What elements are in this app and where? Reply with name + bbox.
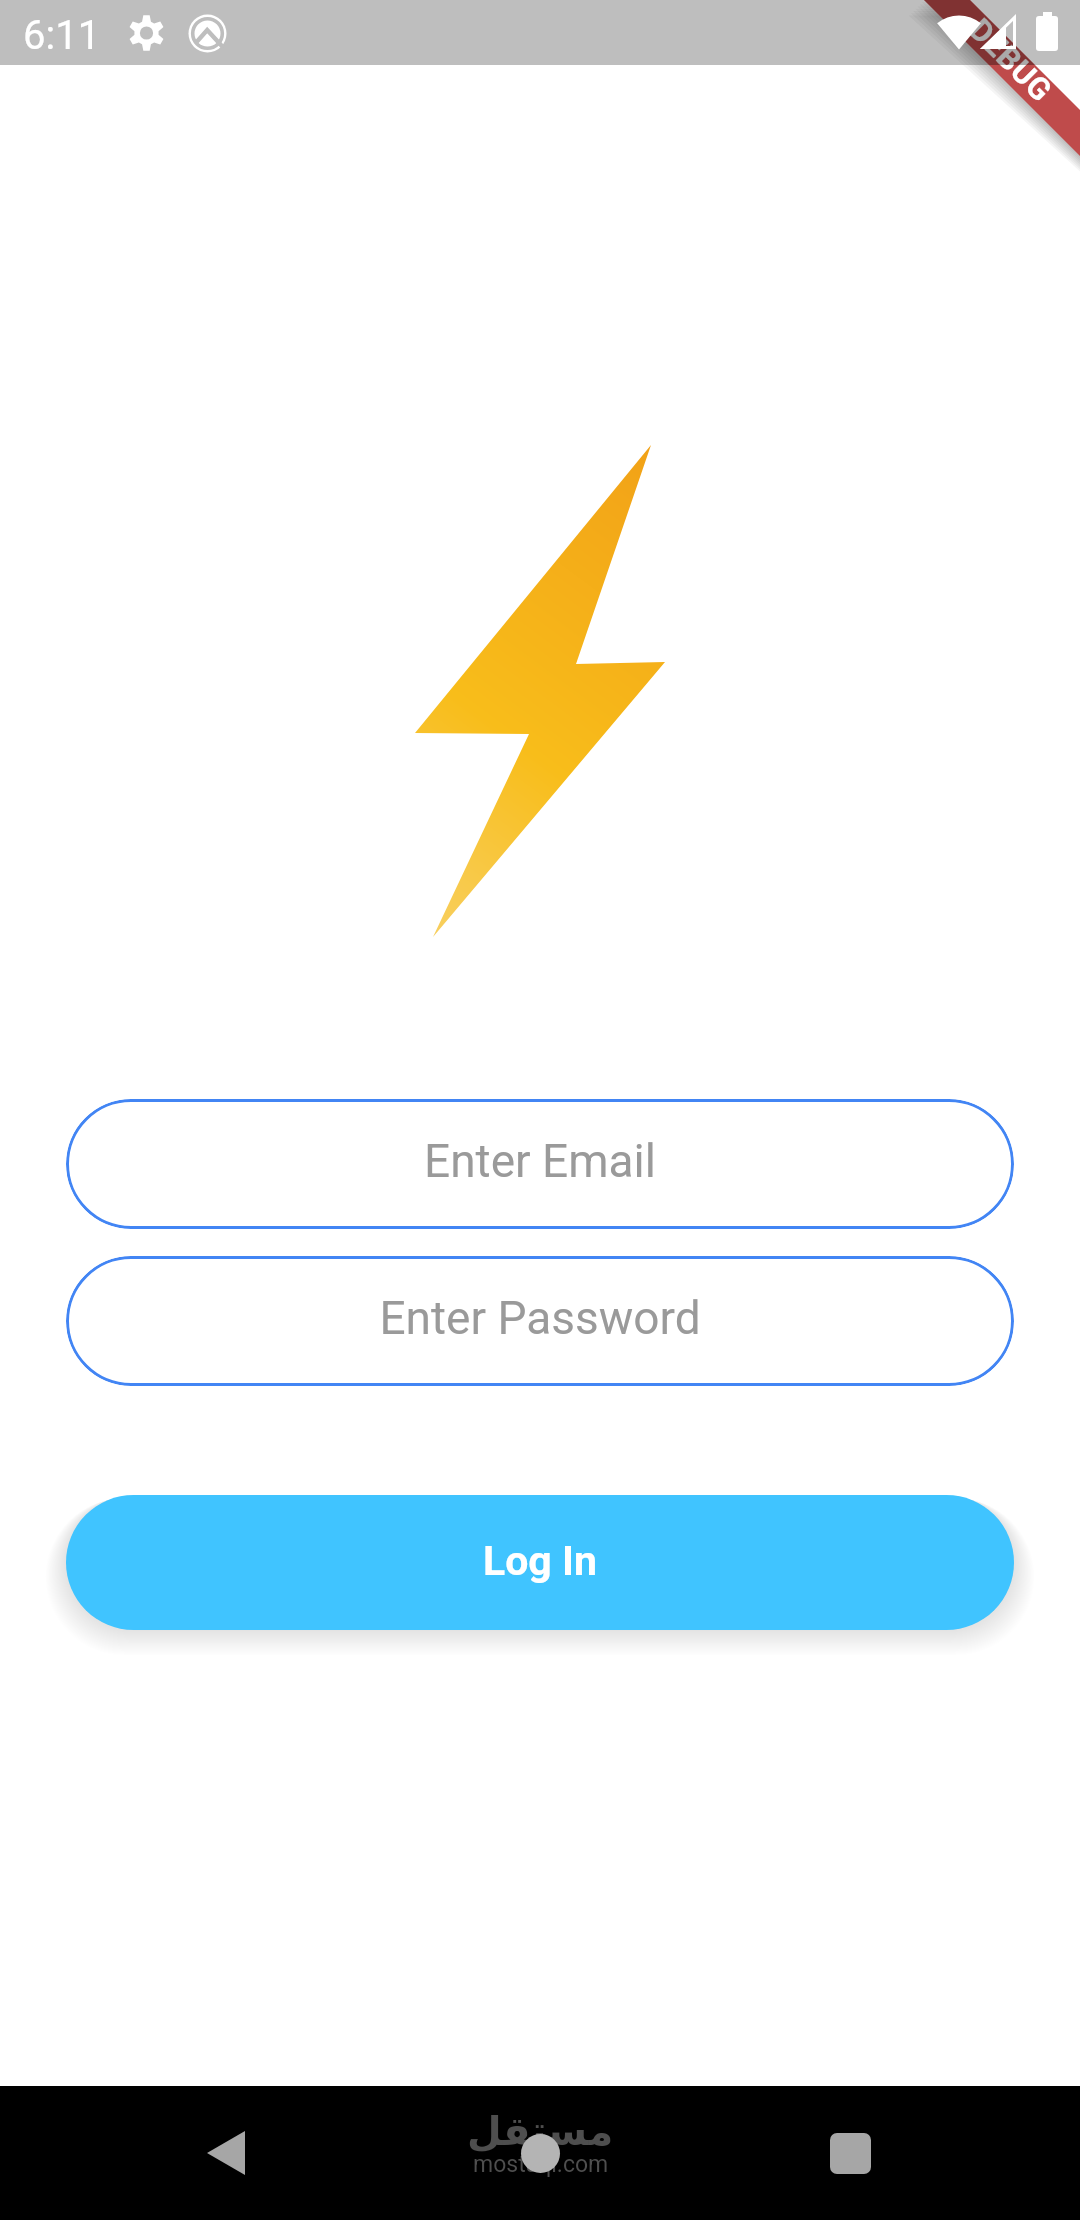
button[interactable]: Back [181,2108,271,2198]
staticText: 6:11 [23,12,101,59]
button[interactable]: Recent apps [805,2108,895,2198]
button[interactable]: Enter Email [66,1099,1014,1229]
button[interactable]: Enter Password [66,1256,1014,1386]
staticText: mostaql.com [473,2151,609,2178]
button[interactable]: Log In [66,1495,1014,1630]
staticText: Enter Email [424,1134,656,1188]
staticText: DEBUG [962,11,1060,109]
button[interactable]: Home [495,2108,585,2198]
staticText: مستقل [467,2108,614,2155]
staticText: Log In [483,1537,597,1585]
staticText: Enter Password [379,1291,701,1345]
